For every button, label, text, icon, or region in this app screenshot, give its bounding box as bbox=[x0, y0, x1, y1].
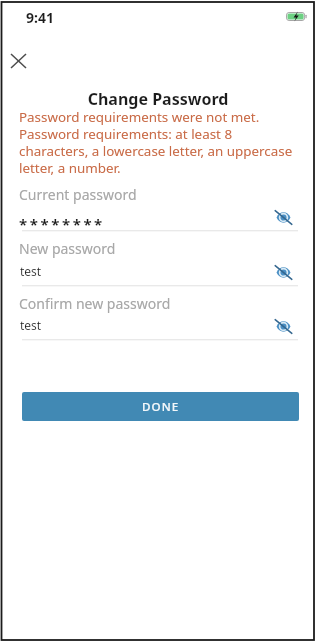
button[interactable]: Show password bbox=[272, 206, 294, 228]
staticText: Change Password bbox=[0, 88, 316, 110]
staticText: Password requirements were not met. Pass… bbox=[19, 108, 309, 177]
button[interactable]: DONE bbox=[22, 392, 299, 421]
staticText: New password bbox=[19, 239, 116, 258]
button[interactable]: Close bbox=[6, 49, 30, 73]
staticText: test bbox=[20, 317, 42, 333]
button[interactable]: Show password bbox=[272, 315, 294, 337]
staticText: DONE bbox=[142, 399, 180, 415]
staticText: ******** bbox=[19, 214, 105, 234]
staticText: 9:41 bbox=[26, 8, 54, 27]
staticText: test bbox=[20, 263, 42, 279]
staticText: Current password bbox=[19, 185, 137, 204]
staticText: Confirm new password bbox=[19, 294, 171, 313]
button[interactable]: Show password bbox=[272, 261, 294, 283]
